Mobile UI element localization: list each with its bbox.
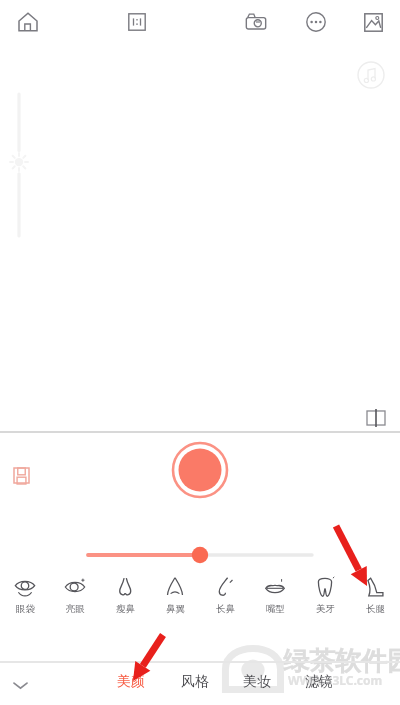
button[interactable]: Save [2, 456, 40, 494]
button[interactable]: 美颜 [108, 667, 154, 697]
staticText: 美牙 [316, 603, 335, 615]
button[interactable]: 嘴型 [250, 574, 300, 615]
button[interactable]: 眼袋 [0, 574, 50, 615]
staticText: 亮眼 [66, 603, 85, 615]
button[interactable]: 亮眼 [50, 574, 100, 615]
staticText: 美妆 [243, 673, 271, 691]
staticText: 滤镜 [305, 673, 333, 691]
staticText: 瘦鼻 [116, 603, 135, 615]
staticText: 绿茶软件园 [283, 645, 400, 678]
button[interactable]: Home [10, 4, 46, 40]
button[interactable]: More options [298, 4, 334, 40]
button[interactable]: 鼻翼 [150, 574, 200, 615]
button[interactable]: 风格 [172, 667, 218, 697]
button[interactable]: 美牙 [300, 574, 350, 615]
button[interactable]: 瘦鼻 [100, 574, 150, 615]
button[interactable]: 滤镜 [296, 667, 342, 697]
staticText: WWW.33LC.com [288, 672, 383, 688]
button[interactable]: Switch camera [238, 4, 274, 40]
button[interactable]: Gallery [355, 4, 391, 40]
staticText: 嘴型 [266, 603, 285, 615]
staticText: 长鼻 [216, 603, 235, 615]
button[interactable]: Aspect ratio 1:1 [119, 4, 155, 40]
staticText: 美颜 [117, 673, 145, 691]
staticText: 风格 [181, 673, 209, 691]
button[interactable]: 长腿 [350, 574, 400, 615]
button[interactable]: Shutter [172, 442, 228, 498]
button[interactable]: Music [356, 60, 386, 90]
staticText: 眼袋 [16, 603, 35, 615]
button[interactable]: 美妆 [234, 667, 280, 697]
button[interactable]: Collapse [4, 669, 36, 701]
staticText: 鼻翼 [166, 603, 185, 615]
button[interactable]: Intensity [88, 545, 312, 565]
button[interactable]: Exposure [12, 92, 26, 238]
button[interactable]: Mirror [360, 402, 392, 434]
button[interactable]: 长鼻 [200, 574, 250, 615]
staticText: 长腿 [366, 603, 385, 615]
